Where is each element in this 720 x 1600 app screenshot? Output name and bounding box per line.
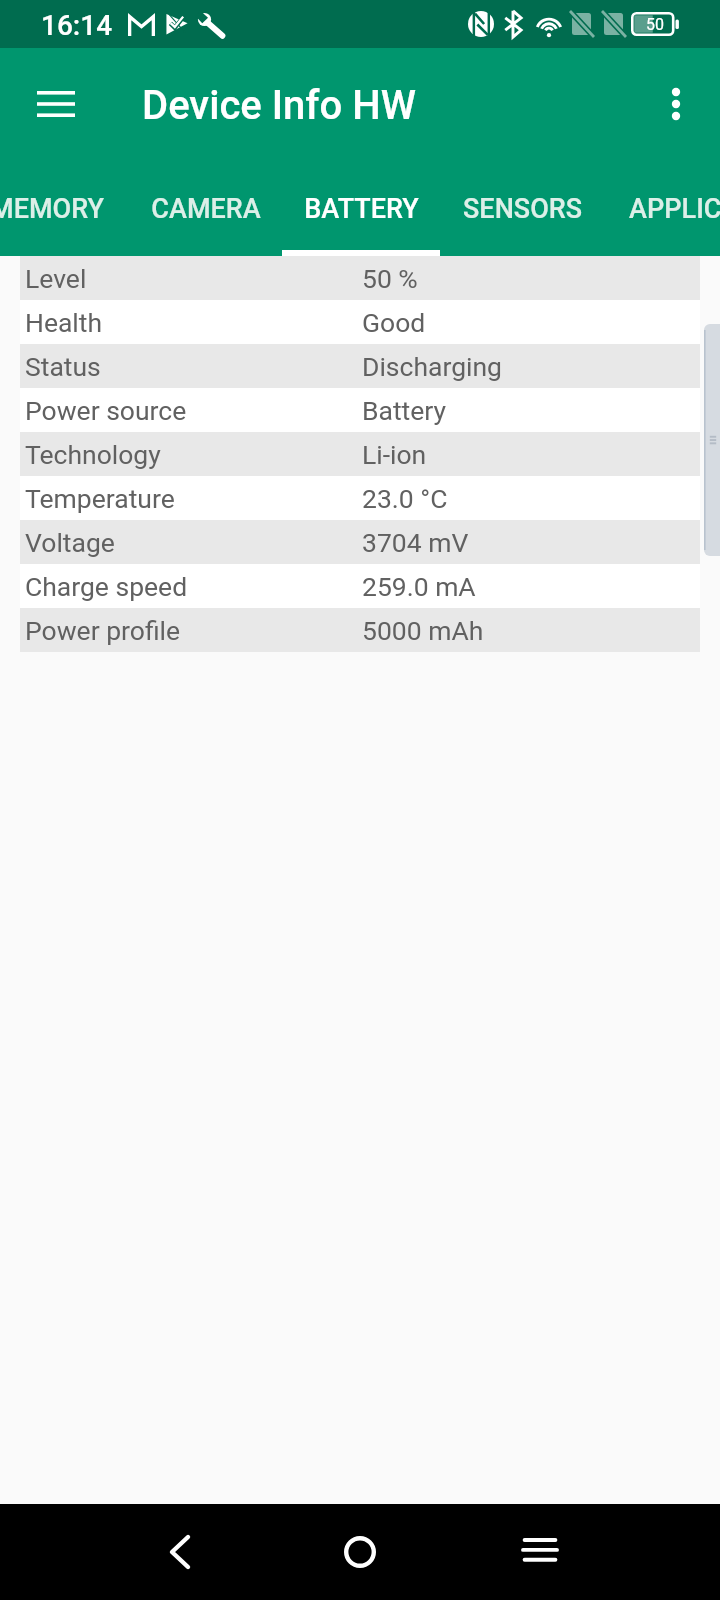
button[interactable]: APPLICATIONS — [629, 160, 720, 256]
staticText: Li-ion — [362, 439, 427, 470]
staticText: CAMERA — [151, 193, 261, 225]
staticText: 23.0 °C — [362, 483, 448, 514]
staticText: 50 % — [362, 263, 418, 294]
staticText: Technology — [25, 439, 362, 470]
staticText: Temperature — [25, 483, 362, 514]
staticText: Device Info HW — [142, 82, 416, 129]
button[interactable]: More options — [640, 68, 712, 140]
button[interactable]: CAMERA — [128, 160, 284, 256]
button[interactable]: Back — [138, 1510, 222, 1594]
staticText: Power source — [25, 395, 362, 426]
staticText: BATTERY — [304, 193, 419, 225]
staticText: Battery — [362, 395, 447, 426]
button[interactable]: Temperature — [0, 476, 720, 520]
staticText: 3704 mV — [362, 527, 469, 558]
staticText: Good — [362, 307, 426, 338]
staticText: 5000 mAh — [362, 615, 484, 646]
button[interactable]: Technology — [0, 432, 720, 476]
staticText: Voltage — [25, 527, 362, 558]
button[interactable]: MEMORY — [0, 160, 125, 256]
staticText: MEMORY — [0, 193, 104, 225]
staticText: Status — [25, 351, 362, 382]
button[interactable]: Open navigation menu — [20, 68, 92, 140]
staticText: Charge speed — [25, 571, 362, 602]
button[interactable]: Status — [0, 344, 720, 388]
staticText: 50 — [633, 15, 677, 39]
staticText: Power profile — [25, 615, 362, 646]
button[interactable]: Level — [0, 256, 720, 300]
button[interactable]: Health — [0, 300, 720, 344]
staticText: Health — [25, 307, 362, 338]
button[interactable]: Power source — [0, 388, 720, 432]
staticText: Discharging — [362, 351, 502, 382]
staticText: 16:14 — [41, 9, 113, 42]
staticText: SENSORS — [463, 193, 582, 225]
button[interactable]: Recent apps — [498, 1510, 582, 1594]
staticText: Level — [25, 263, 362, 294]
staticText: 259.0 mA — [362, 571, 476, 602]
button[interactable]: BATTERY — [283, 160, 439, 256]
button[interactable]: Power profile — [0, 608, 720, 652]
staticText: APPLICATIONS — [629, 193, 720, 225]
button[interactable]: SENSORS — [444, 160, 600, 256]
button[interactable]: Charge speed — [0, 564, 720, 608]
button[interactable]: Home — [318, 1510, 402, 1594]
button[interactable]: Voltage — [0, 520, 720, 564]
